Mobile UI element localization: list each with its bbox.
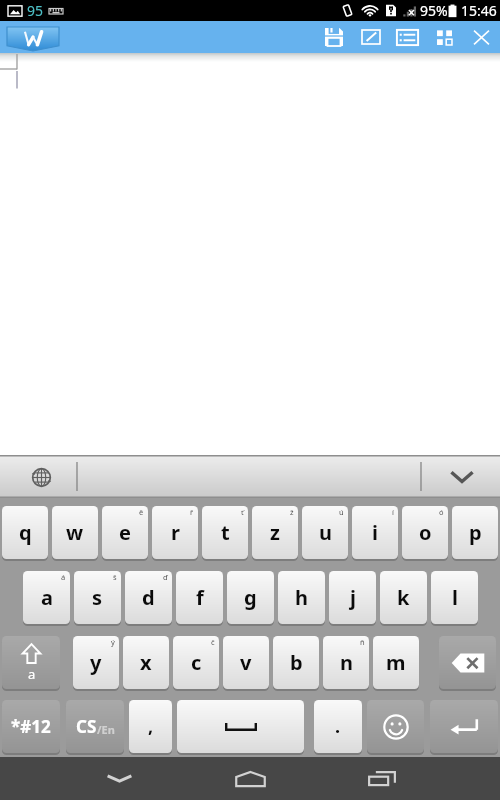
staticText: ú [339,507,344,517]
button[interactable]: n [323,636,369,689]
staticText: z [270,519,280,546]
staticText: y [90,649,102,676]
button[interactable]: Switch language [66,700,124,753]
button[interactable]: Back [83,757,155,800]
staticText: p [469,519,482,546]
button[interactable]: Save [315,21,352,53]
staticText: s [92,584,103,611]
staticText: ď [163,572,168,582]
button[interactable]: w [52,506,98,559]
staticText: a [41,584,53,611]
staticText: f [196,584,204,611]
button[interactable]: Emoji [367,700,424,753]
staticText: , [148,714,154,739]
staticText: á [61,572,66,582]
staticText: c [191,649,202,676]
staticText: v [240,649,252,676]
staticText: e [119,519,131,546]
button[interactable]: Change input language [25,461,57,493]
button[interactable]: h [278,571,325,624]
button[interactable]: Recent apps [346,757,418,800]
button[interactable]: . [314,700,362,753]
staticText: ř [190,507,194,517]
button[interactable]: y [73,636,119,689]
button[interactable]: Space [177,700,304,753]
button[interactable]: u [302,506,348,559]
staticText: w [66,519,84,546]
button[interactable]: m [373,636,419,689]
staticText: 15:46 [461,1,497,20]
button[interactable]: p [452,506,498,559]
button[interactable]: Hide keyboard [445,460,479,494]
staticText: CS [76,715,97,738]
button[interactable]: c [173,636,219,689]
staticText: ý [111,637,115,647]
button[interactable]: s [74,571,121,624]
staticText: k [397,584,410,611]
staticText: 95 [27,1,44,20]
button[interactable]: Shift [2,636,60,689]
button[interactable]: v [223,636,269,689]
staticText: g [244,584,257,611]
staticText: u [319,519,332,546]
staticText: l [452,584,458,611]
staticText: ž [290,507,294,517]
staticText: o [419,519,432,546]
button[interactable]: Symbols [2,700,60,753]
button[interactable]: b [273,636,319,689]
staticText: í [392,507,394,517]
staticText: . [335,714,341,739]
staticText: ť [241,507,244,517]
button[interactable]: More apps [426,21,463,53]
button[interactable]: Backspace [439,636,496,689]
staticText: *#12 [11,715,51,738]
staticText: š [113,572,117,582]
button[interactable]: Edit [352,21,389,53]
button[interactable]: Enter [430,700,498,753]
staticText: i [372,519,378,546]
staticText: č [211,637,215,647]
button[interactable]: g [227,571,274,624]
button[interactable]: f [176,571,223,624]
staticText: r [171,519,180,546]
button[interactable]: l [431,571,478,624]
staticText: q [19,519,32,546]
button[interactable]: t [202,506,248,559]
button[interactable]: Home [214,757,286,800]
staticText: t [221,519,230,546]
button[interactable]: r [152,506,198,559]
staticText: /En [97,722,115,737]
staticText: ó [439,507,444,517]
staticText: d [142,584,155,611]
staticText: n [340,649,353,676]
button[interactable]: z [252,506,298,559]
button[interactable]: Close [463,21,500,53]
button[interactable]: , [129,700,172,753]
button[interactable]: x [123,636,169,689]
button[interactable]: a [23,571,70,624]
staticText: j [350,584,356,611]
staticText: ň [360,637,365,647]
staticText: 95% [420,1,448,20]
staticText: m [386,649,406,676]
button[interactable]: q [2,506,48,559]
button[interactable]: j [329,571,376,624]
button[interactable]: Outline [389,21,426,53]
button[interactable]: Document menu [7,27,59,51]
button[interactable] [0,53,500,455]
staticText: h [295,584,308,611]
staticText: b [290,649,303,676]
staticText: x [140,649,152,676]
staticText: a [28,665,36,683]
button[interactable]: k [380,571,427,624]
button[interactable]: i [352,506,398,559]
button[interactable]: o [402,506,448,559]
button[interactable]: e [102,506,148,559]
button[interactable]: d [125,571,172,624]
staticText: ě [139,507,144,517]
